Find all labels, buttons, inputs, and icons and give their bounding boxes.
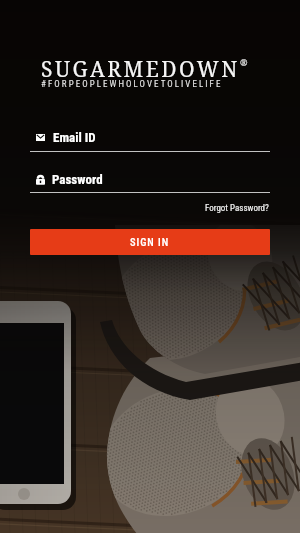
button[interactable]: Email xyxy=(0,126,300,153)
other: Password xyxy=(36,174,45,185)
staticText: SIGN IN xyxy=(130,236,170,248)
staticText: Email ID xyxy=(53,130,96,145)
staticText: Forgot Password? xyxy=(205,203,269,214)
other: Email xyxy=(36,133,45,142)
staticText: SUGARMEDOWN xyxy=(41,55,240,84)
button[interactable]: SIGN IN xyxy=(30,229,270,255)
staticText: ® xyxy=(240,56,248,68)
staticText: #FORPEOPLEWHOLOVETOLIVELIFE xyxy=(41,79,223,90)
staticText: Password xyxy=(52,172,103,187)
button[interactable]: Forgot Password? xyxy=(202,201,272,216)
button[interactable]: Password xyxy=(0,167,300,194)
